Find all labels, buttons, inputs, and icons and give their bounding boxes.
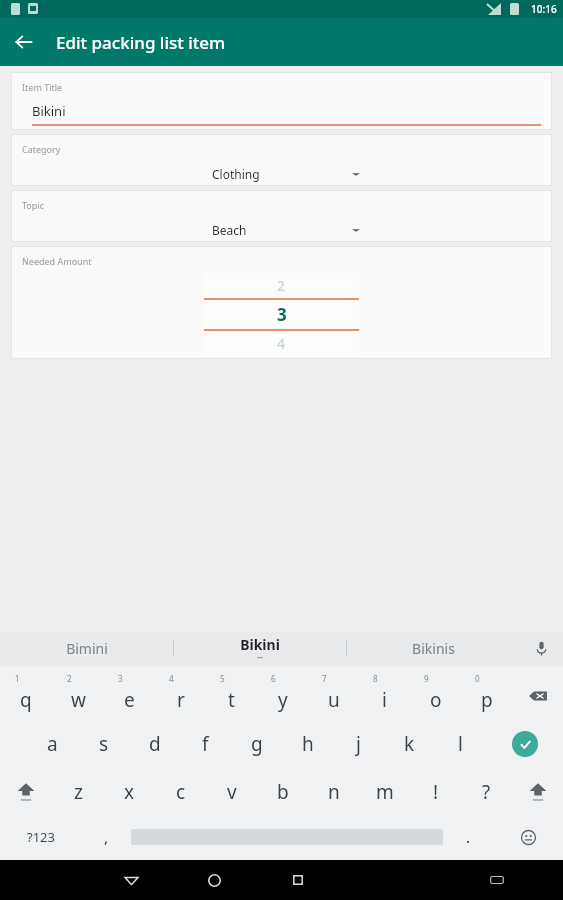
- staticText: 3: [277, 303, 287, 326]
- staticText: z: [74, 779, 83, 805]
- button[interactable]: x: [104, 768, 155, 816]
- staticText: 10:16: [531, 2, 557, 16]
- button[interactable]: m: [359, 768, 410, 816]
- staticText: t: [228, 687, 235, 713]
- staticText: .: [466, 827, 471, 847]
- staticText: s: [99, 731, 109, 757]
- staticText: n: [328, 779, 340, 805]
- staticText: w: [71, 687, 86, 713]
- staticText: Topic: [22, 199, 44, 211]
- staticText: r: [177, 687, 185, 713]
- staticText: u: [328, 687, 340, 713]
- staticText: c: [176, 779, 186, 805]
- button[interactable]: 2: [204, 273, 359, 356]
- button[interactable]: z: [52, 768, 104, 816]
- staticText: 7: [322, 673, 327, 684]
- staticText: x: [124, 779, 135, 805]
- button[interactable]: n: [308, 768, 359, 816]
- button[interactable]: d: [129, 720, 180, 768]
- staticText: e: [124, 687, 135, 713]
- button[interactable]: Bikinis: [347, 631, 519, 666]
- button[interactable]: g: [231, 720, 282, 768]
- button[interactable]: h: [282, 720, 333, 768]
- button[interactable]: j: [333, 720, 384, 768]
- button[interactable]: 6: [257, 672, 308, 720]
- staticText: i: [382, 687, 387, 713]
- staticText: Bikinis: [412, 639, 455, 658]
- button[interactable]: s: [78, 720, 129, 768]
- staticText: 4: [277, 334, 286, 353]
- staticText: Category: [22, 143, 61, 155]
- button[interactable]: Home: [173, 860, 256, 900]
- staticText: l: [458, 731, 463, 757]
- staticText: d: [149, 731, 161, 757]
- staticText: Bimini: [66, 639, 108, 658]
- staticText: m: [376, 779, 394, 805]
- button[interactable]: Back: [0, 18, 48, 66]
- staticText: 2: [277, 276, 286, 295]
- button[interactable]: 3: [104, 672, 155, 720]
- button[interactable]: k: [384, 720, 435, 768]
- staticText: ,: [104, 827, 109, 847]
- button[interactable]: Bikini: [174, 631, 346, 666]
- staticText: 4: [169, 673, 174, 684]
- staticText: 8: [373, 673, 378, 684]
- button[interactable]: 8: [359, 672, 410, 720]
- button[interactable]: v: [206, 768, 257, 816]
- staticText: Bikini: [240, 635, 280, 654]
- staticText: 0: [475, 673, 480, 684]
- button[interactable]: 0: [461, 672, 512, 720]
- staticText: p: [481, 687, 493, 713]
- staticText: Edit packing list item: [56, 31, 226, 54]
- button[interactable]: Shift: [0, 768, 52, 816]
- button[interactable]: !: [410, 768, 461, 816]
- button[interactable]: 9: [410, 672, 461, 720]
- button[interactable]: 1: [0, 672, 52, 720]
- button[interactable]: b: [257, 768, 308, 816]
- button[interactable]: Recents: [256, 860, 339, 900]
- staticText: 5: [220, 673, 225, 684]
- button[interactable]: Shift: [512, 768, 563, 816]
- button[interactable]: ?: [461, 768, 512, 816]
- button[interactable]: Hide keyboard: [455, 860, 538, 900]
- staticText: 3: [118, 673, 123, 684]
- staticText: Bikini: [32, 102, 66, 120]
- button[interactable]: Bimini: [0, 631, 173, 666]
- staticText: f: [202, 731, 209, 757]
- staticText: ?: [482, 779, 491, 805]
- staticText: v: [227, 779, 237, 805]
- staticText: h: [302, 731, 314, 757]
- button[interactable]: 4: [155, 672, 206, 720]
- staticText: Beach: [212, 222, 351, 238]
- button[interactable]: Back: [90, 860, 173, 900]
- staticText: Clothing: [212, 166, 351, 182]
- button[interactable]: Clothing: [212, 163, 361, 185]
- button[interactable]: ?123: [0, 816, 81, 858]
- button[interactable]: l: [435, 720, 486, 768]
- staticText: Item Title: [22, 81, 63, 93]
- button[interactable]: Emoji: [493, 816, 563, 858]
- staticText: b: [277, 779, 289, 805]
- staticText: o: [430, 687, 442, 713]
- button[interactable]: 5: [206, 672, 257, 720]
- staticText: 6: [271, 673, 276, 684]
- button[interactable]: 2: [52, 672, 104, 720]
- staticText: q: [20, 687, 32, 713]
- staticText: a: [47, 731, 58, 757]
- button[interactable]: f: [180, 720, 231, 768]
- button[interactable]: 7: [308, 672, 359, 720]
- staticText: j: [356, 731, 361, 757]
- button[interactable]: a: [27, 720, 78, 768]
- button[interactable]: .: [443, 816, 493, 858]
- staticText: g: [251, 731, 263, 757]
- button[interactable]: Backspace: [512, 672, 563, 720]
- button[interactable]: c: [155, 768, 206, 816]
- button[interactable]: ,: [81, 816, 131, 858]
- staticText: •••: [257, 655, 263, 662]
- button[interactable]: Beach: [212, 219, 361, 241]
- button[interactable]: Voice input: [519, 631, 563, 666]
- button[interactable]: Enter: [486, 720, 563, 768]
- staticText: 2: [67, 673, 72, 684]
- staticText: 1: [15, 673, 20, 684]
